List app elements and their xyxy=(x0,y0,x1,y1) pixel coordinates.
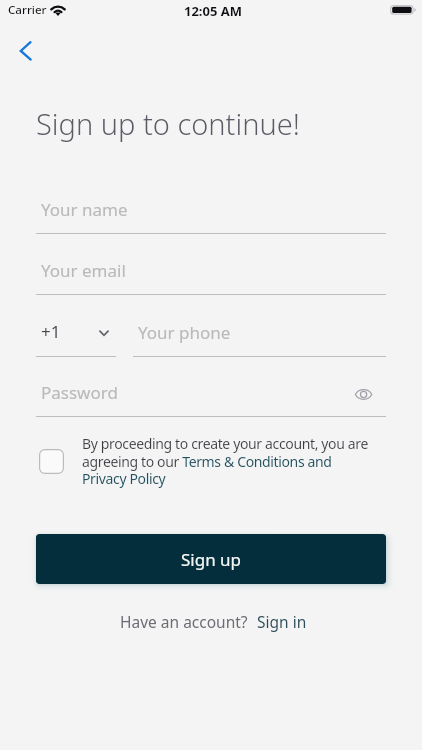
staticText: Sign in xyxy=(257,611,307,632)
button[interactable]: By proceeding to create your account, yo… xyxy=(82,434,372,488)
button[interactable]: Sign up xyxy=(36,534,386,584)
button[interactable]: Show password xyxy=(350,381,378,409)
staticText: Carrier xyxy=(8,2,47,18)
button[interactable]: Back xyxy=(10,35,42,67)
staticText: Your phone xyxy=(138,321,231,344)
button[interactable]: Accept terms and conditions xyxy=(39,449,64,474)
button[interactable]: Your email xyxy=(36,258,386,294)
staticText: 12:05 AM xyxy=(184,2,243,20)
staticText: Have an account? xyxy=(120,611,248,632)
staticText: Your email xyxy=(41,259,126,282)
staticText: Sign up xyxy=(181,548,242,571)
button[interactable]: Your name xyxy=(36,197,386,233)
staticText: Password xyxy=(41,381,118,404)
button[interactable]: Your phone xyxy=(133,320,386,356)
button[interactable]: Sign in xyxy=(257,611,307,632)
staticText: Sign up to continue! xyxy=(36,104,300,143)
button[interactable]: Password xyxy=(36,380,386,416)
button[interactable]: +1 xyxy=(36,320,116,356)
staticText: +1 xyxy=(41,320,61,343)
staticText: Your name xyxy=(41,198,128,221)
staticText: By proceeding to create your account, yo… xyxy=(82,434,372,488)
